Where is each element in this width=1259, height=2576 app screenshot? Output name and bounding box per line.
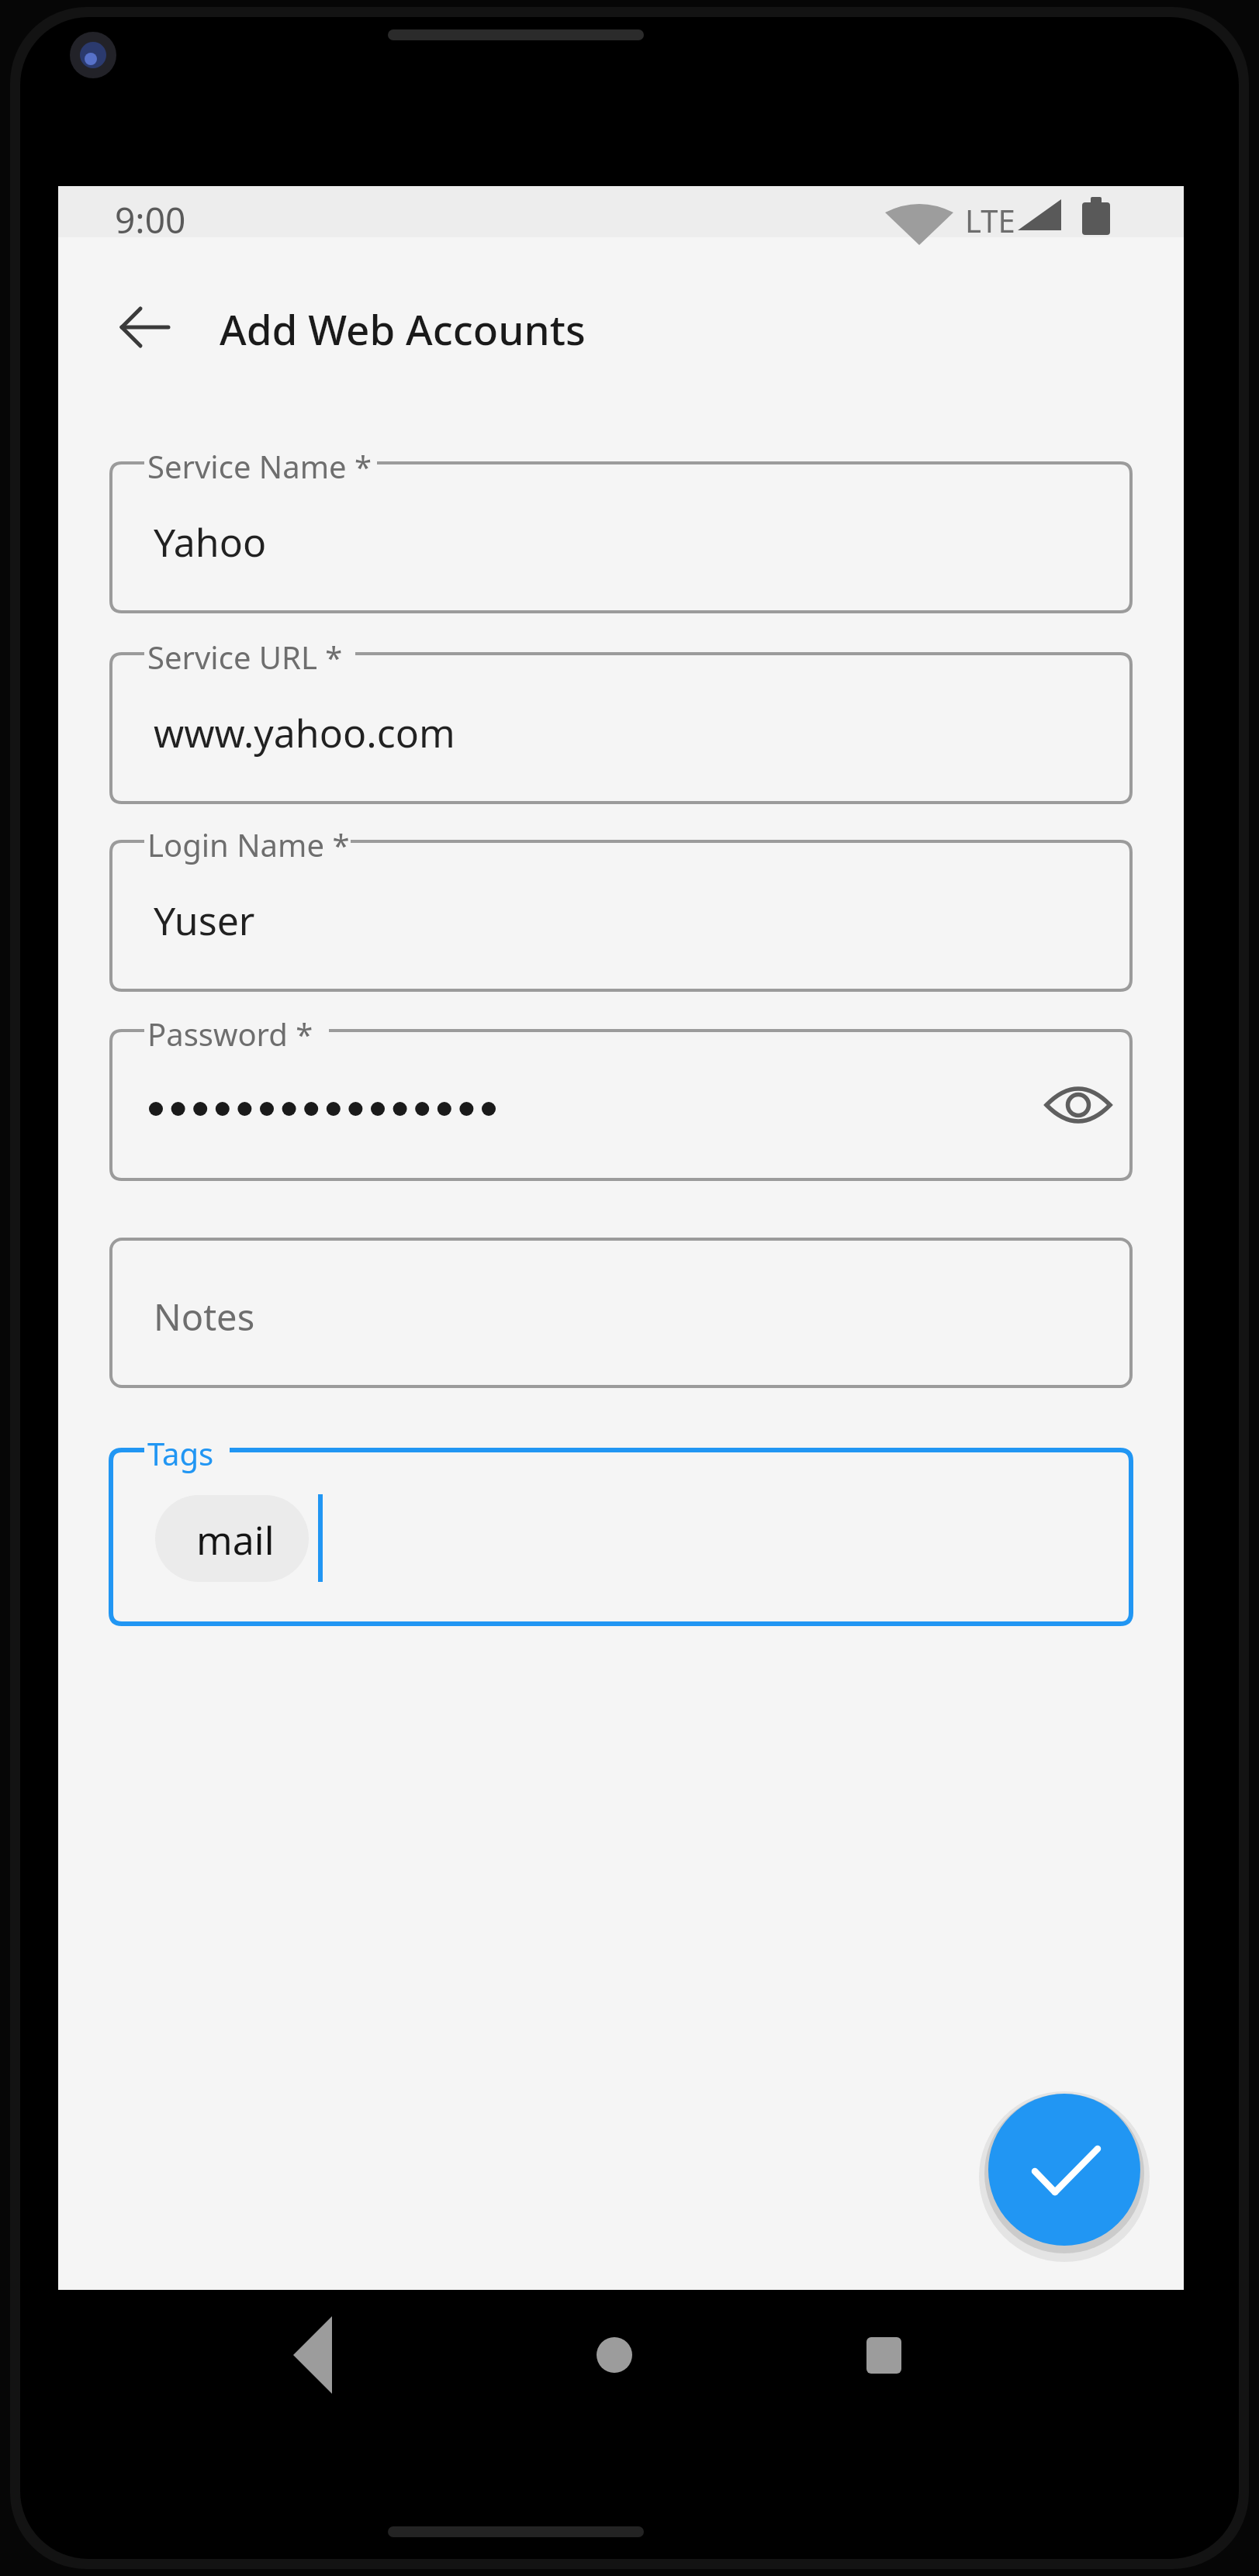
- button[interactable]: Login Name *: [111, 841, 1131, 990]
- staticText: 9:00: [115, 195, 186, 244]
- button[interactable]: Password *: [111, 1031, 1131, 1179]
- button[interactable]: Save: [988, 2094, 1141, 2246]
- staticText: Tags: [147, 1432, 214, 1474]
- button[interactable]: Recents: [838, 2308, 931, 2402]
- button[interactable]: Back: [264, 2308, 357, 2402]
- staticText: Service Name *: [147, 445, 372, 487]
- button[interactable]: Add Web Accounts: [220, 301, 586, 357]
- staticText: Service URL *: [147, 636, 343, 678]
- button[interactable]: Tags: [111, 1450, 1131, 1624]
- staticText: LTE: [965, 199, 1015, 241]
- staticText: Yahoo: [154, 516, 267, 568]
- button[interactable]: Service URL *: [111, 654, 1131, 803]
- staticText: Password *: [147, 1013, 313, 1055]
- staticText: Login Name *: [147, 824, 350, 865]
- button[interactable]: Home: [568, 2308, 661, 2402]
- staticText: www.yahoo.com: [154, 706, 455, 759]
- button[interactable]: Notes: [111, 1239, 1131, 1386]
- staticText: Yuser: [154, 894, 255, 947]
- staticText: mail: [196, 1514, 275, 1566]
- button[interactable]: Show password: [1032, 1058, 1126, 1153]
- button[interactable]: Service Name *: [111, 463, 1131, 612]
- button[interactable]: Back: [87, 281, 180, 374]
- staticText: Notes: [154, 1292, 255, 1342]
